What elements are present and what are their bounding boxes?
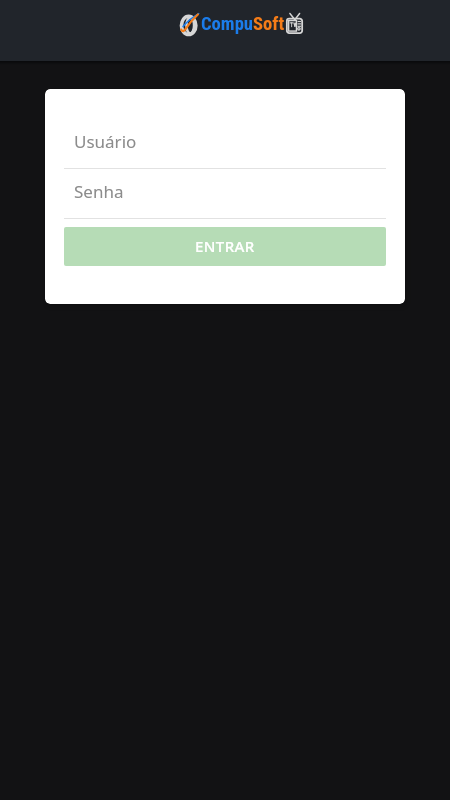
staticText: ENTRAR	[195, 236, 255, 256]
staticText: Compu	[201, 13, 253, 35]
button[interactable]: Usuário	[64, 130, 386, 169]
button[interactable]: Senha	[64, 180, 386, 219]
staticText: Soft	[253, 13, 285, 35]
button[interactable]: ENTRAR	[64, 227, 386, 266]
other: TV	[286, 12, 303, 36]
staticText: Usuário	[74, 130, 137, 153]
button[interactable]: CompuSoft TV	[180, 9, 303, 39]
staticText: Senha	[74, 180, 124, 203]
